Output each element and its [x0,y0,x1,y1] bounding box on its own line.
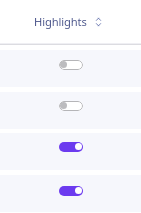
button[interactable]: Show highlights [0,45,141,87]
button[interactable]: Highlight notifications [0,170,141,212]
button[interactable]: Highlights, sort order [0,0,141,43]
button[interactable]: Sync highlights [0,128,141,170]
button[interactable]: Highlight replies [0,87,141,129]
button[interactable]: Highlight notifications, on [59,186,83,196]
staticText: Highlights [34,14,87,29]
button[interactable]: Highlight replies, off [59,101,83,111]
button[interactable]: Sync highlights, on [59,142,83,152]
button[interactable]: Show highlights, off [59,60,83,70]
